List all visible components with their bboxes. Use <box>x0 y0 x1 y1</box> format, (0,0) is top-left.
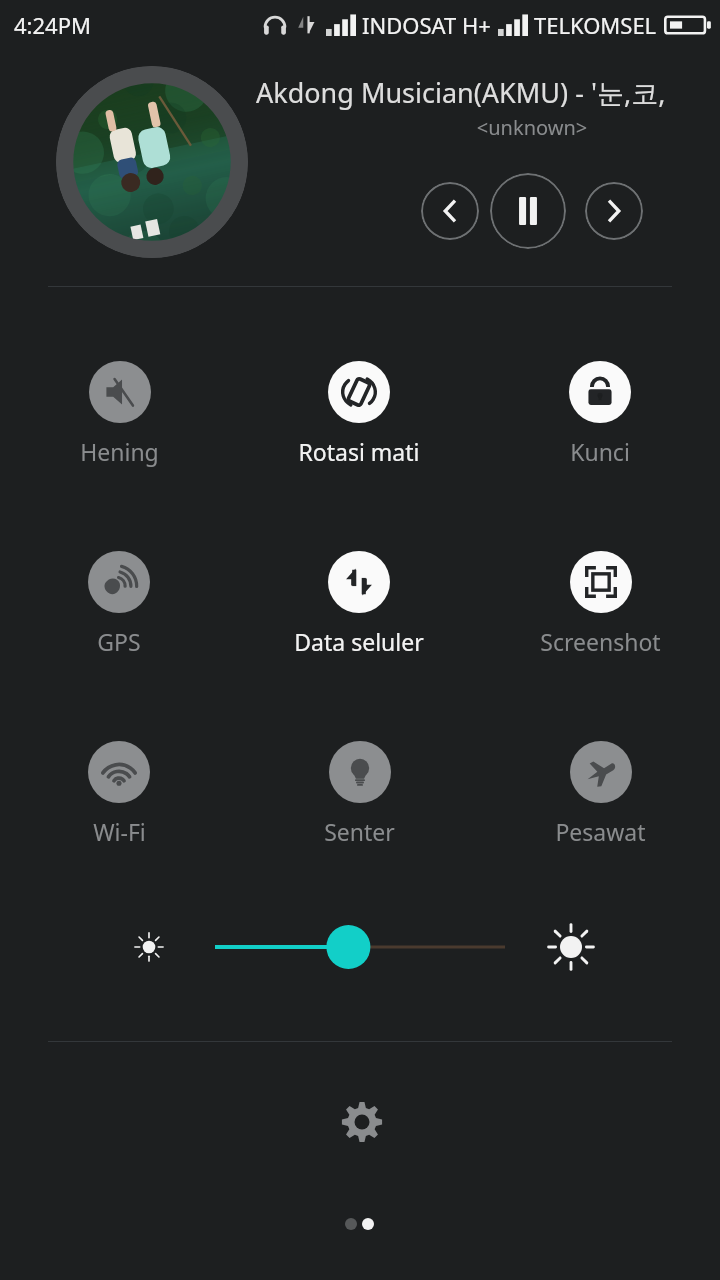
button[interactable]: Pesawat <box>500 741 700 871</box>
staticText: <unknown> <box>256 114 720 141</box>
button[interactable]: Settings <box>330 1090 394 1154</box>
staticText: INDOSAT <box>362 10 457 40</box>
button[interactable]: Hening <box>19 361 219 491</box>
button[interactable]: Senter <box>259 741 459 871</box>
button[interactable]: Next <box>585 182 643 240</box>
button[interactable]: Lower brightness <box>118 916 180 978</box>
button[interactable]: Pause <box>490 173 566 249</box>
button[interactable]: Brightness slider <box>215 917 505 977</box>
staticText: TELKOMSEL <box>534 10 657 40</box>
staticText: Pesawat <box>555 816 646 847</box>
staticText: Screenshot <box>540 626 661 657</box>
staticText: GPS <box>97 626 141 657</box>
staticText: H+ <box>462 10 491 40</box>
button[interactable]: Previous <box>421 182 479 240</box>
button[interactable]: Kunci <box>500 361 700 491</box>
staticText: Rotasi mati <box>298 436 420 467</box>
staticText: 4:24PM <box>14 10 91 40</box>
staticText: Wi-Fi <box>93 816 146 847</box>
button[interactable]: GPS <box>19 551 219 681</box>
staticText: Data seluler <box>294 626 424 657</box>
staticText: Senter <box>324 816 395 847</box>
button[interactable]: Raise brightness <box>540 916 602 978</box>
staticText: Hening <box>80 436 159 467</box>
staticText: Kunci <box>570 436 630 467</box>
staticText: Akdong Musician(AKMU) - '눈,코,입 <box>256 74 686 111</box>
button[interactable]: Album art <box>56 66 248 258</box>
button[interactable]: Rotasi mati <box>259 361 459 491</box>
button[interactable]: Wi-Fi <box>19 741 219 871</box>
button[interactable]: Screenshot <box>500 551 700 681</box>
button[interactable]: Data seluler <box>259 551 459 681</box>
